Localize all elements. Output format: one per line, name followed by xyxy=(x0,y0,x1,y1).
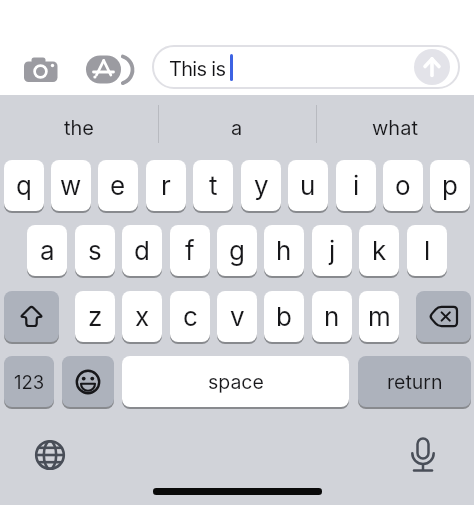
button[interactable]: f xyxy=(170,225,210,276)
staticText: z xyxy=(88,301,103,332)
staticText: p xyxy=(442,170,458,201)
staticText: w xyxy=(60,170,82,201)
button[interactable]: a xyxy=(27,225,67,276)
button[interactable]: n xyxy=(312,291,352,342)
button[interactable]: e xyxy=(98,160,138,211)
button[interactable]: p xyxy=(430,160,470,211)
button[interactable]: g xyxy=(217,225,257,276)
staticText: g xyxy=(229,235,245,266)
staticText: o xyxy=(395,170,411,201)
button[interactable]: s xyxy=(75,225,115,276)
button[interactable] xyxy=(26,431,74,479)
staticText: This is xyxy=(169,57,226,81)
button[interactable]: what xyxy=(316,102,474,154)
staticText: n xyxy=(324,301,340,332)
staticText: space xyxy=(208,370,264,394)
staticText: x xyxy=(135,301,150,332)
staticText: y xyxy=(254,170,269,201)
staticText: i xyxy=(353,170,360,201)
button[interactable]: m xyxy=(359,291,399,342)
button[interactable] xyxy=(16,50,64,90)
button[interactable]: t xyxy=(193,160,233,211)
button[interactable]: 123 xyxy=(4,356,54,407)
button[interactable]: return xyxy=(358,356,471,407)
button[interactable]: w xyxy=(51,160,91,211)
button[interactable]: u xyxy=(288,160,328,211)
button[interactable]: z xyxy=(75,291,115,342)
staticText: e xyxy=(110,170,126,201)
staticText: h xyxy=(276,235,292,266)
staticText: t xyxy=(209,170,218,201)
button[interactable]: h xyxy=(264,225,304,276)
button[interactable] xyxy=(62,356,114,407)
staticText: r xyxy=(161,170,171,201)
button[interactable]: l xyxy=(407,225,447,276)
button[interactable]: c xyxy=(170,291,210,342)
staticText: what xyxy=(372,116,418,140)
staticText: 123 xyxy=(14,371,45,393)
button[interactable] xyxy=(414,49,450,85)
button[interactable]: d xyxy=(122,225,162,276)
staticText: f xyxy=(185,235,195,266)
staticText: a xyxy=(40,235,55,266)
button[interactable] xyxy=(398,431,446,479)
button[interactable]: i xyxy=(336,160,376,211)
button[interactable]: a xyxy=(158,102,316,154)
staticText: k xyxy=(372,235,387,266)
button[interactable]: q xyxy=(4,160,44,211)
button[interactable] xyxy=(416,291,471,342)
button[interactable]: b xyxy=(264,291,304,342)
staticText: s xyxy=(88,235,102,266)
button[interactable] xyxy=(4,291,59,342)
button[interactable]: x xyxy=(122,291,162,342)
staticText: q xyxy=(16,170,32,201)
staticText: j xyxy=(329,235,336,266)
button[interactable]: space xyxy=(122,356,349,407)
button[interactable]: o xyxy=(383,160,423,211)
staticText: l xyxy=(424,235,431,266)
staticText: m xyxy=(368,301,391,332)
staticText: b xyxy=(276,301,292,332)
button[interactable] xyxy=(82,50,138,90)
staticText: v xyxy=(230,301,245,332)
staticText: the xyxy=(64,116,95,140)
button[interactable]: j xyxy=(312,225,352,276)
staticText: return xyxy=(387,370,443,394)
button[interactable]: y xyxy=(241,160,281,211)
button[interactable]: the xyxy=(0,102,158,154)
staticText: u xyxy=(300,170,316,201)
staticText: a xyxy=(231,116,243,140)
staticText: c xyxy=(183,301,198,332)
button[interactable]: This is xyxy=(152,45,460,89)
button[interactable]: r xyxy=(146,160,186,211)
button[interactable]: k xyxy=(359,225,399,276)
staticText: d xyxy=(134,235,150,266)
button[interactable]: v xyxy=(217,291,257,342)
